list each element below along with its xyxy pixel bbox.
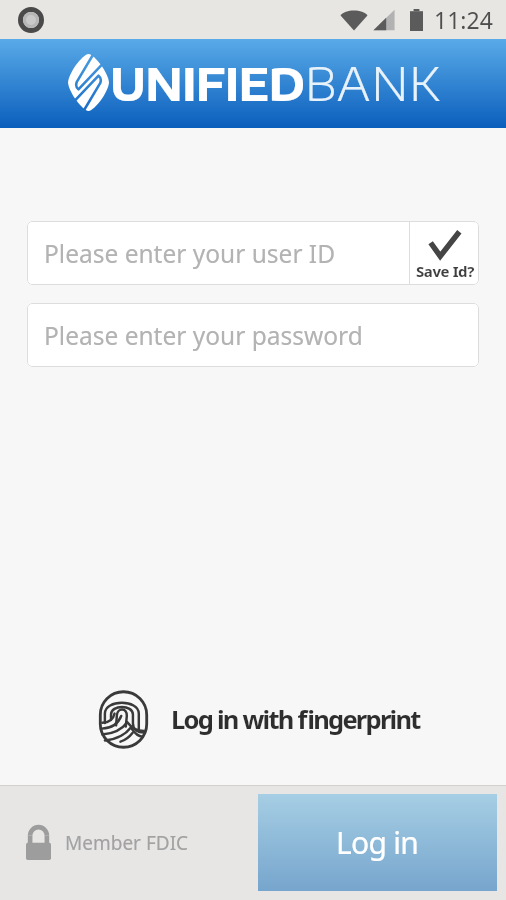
staticText: Please enter your password <box>44 319 363 352</box>
button[interactable]: Log in <box>258 794 497 891</box>
staticText: BANK <box>305 55 441 111</box>
button[interactable]: Save Id <box>410 221 479 285</box>
button[interactable]: Please enter your user ID <box>27 221 409 285</box>
staticText: UNIFIED <box>110 55 305 111</box>
staticText: Log in with fingerprint <box>171 702 420 737</box>
button[interactable]: Log in with fingerprint <box>0 684 506 755</box>
staticText: 11:24 <box>434 4 493 35</box>
staticText: Save Id? <box>416 261 474 281</box>
button[interactable]: Please enter your password <box>27 303 479 367</box>
staticText: Please enter your user ID <box>44 237 336 270</box>
other: Camera indicator <box>18 7 44 33</box>
staticText: Log in <box>336 822 419 863</box>
button[interactable]: Member FDIC <box>26 825 189 860</box>
staticText: Member FDIC <box>65 830 189 856</box>
